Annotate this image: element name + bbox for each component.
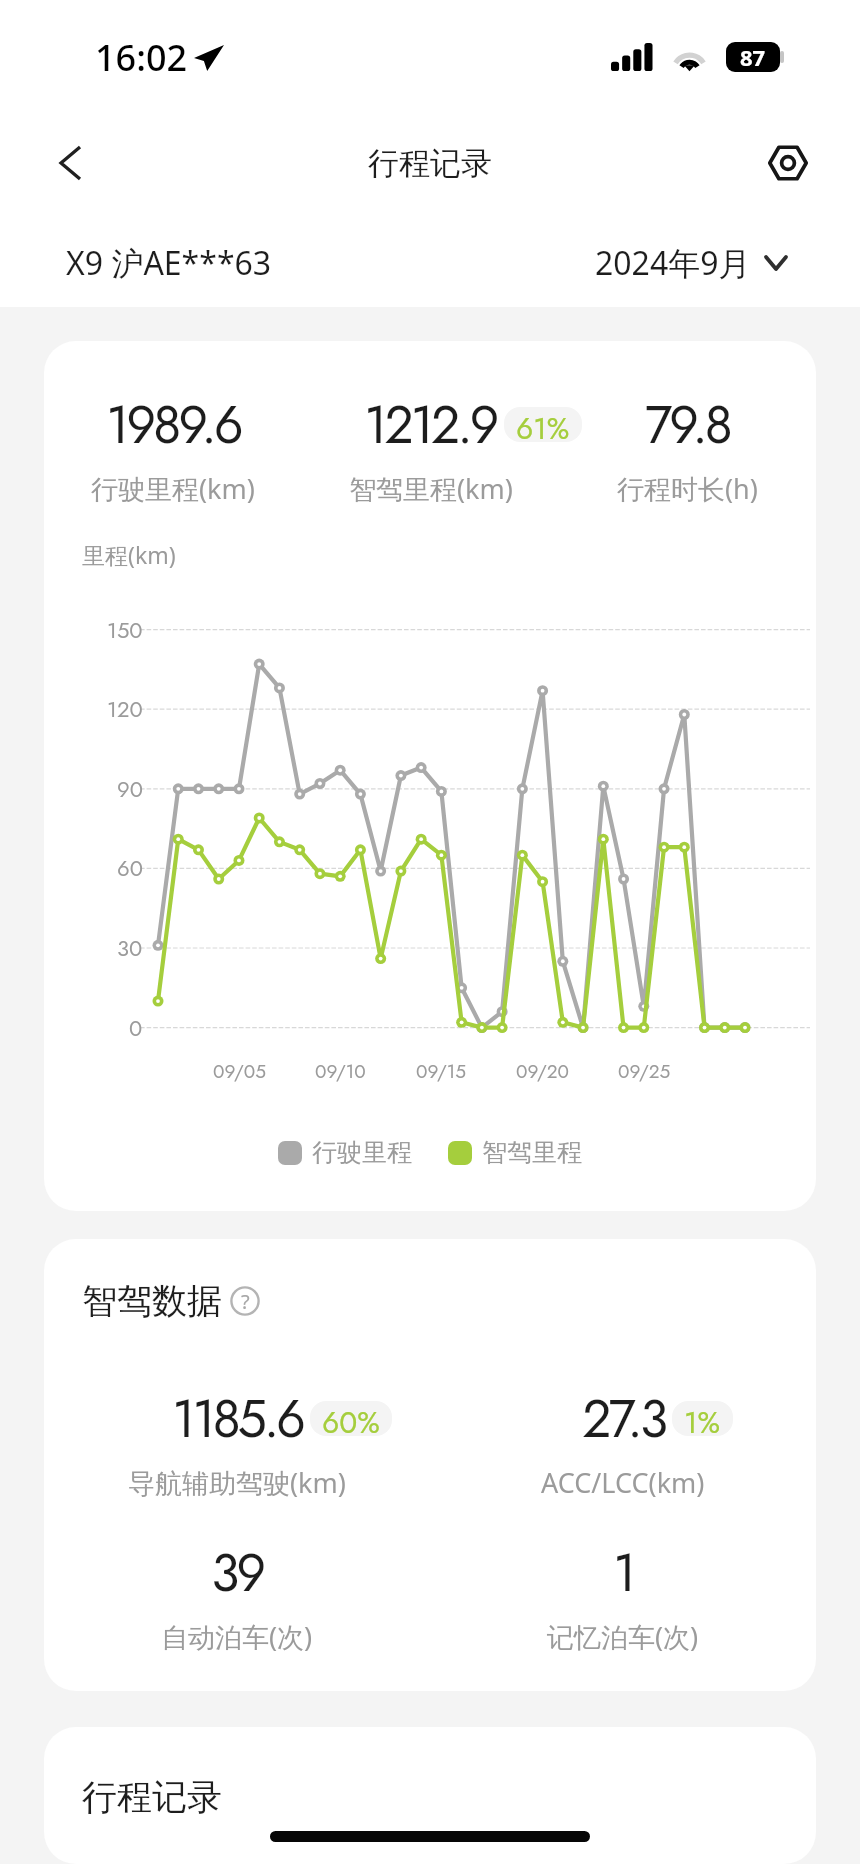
staticText: 60	[117, 852, 143, 884]
staticText: 自动泊车(次)	[161, 1618, 313, 1655]
staticText: 智驾里程	[482, 1137, 582, 1168]
staticText: 记忆泊车(次)	[547, 1618, 699, 1655]
staticText: 09/15	[416, 1058, 467, 1085]
staticText: 79.8	[645, 387, 730, 462]
staticText: 87	[740, 42, 766, 72]
staticText: 09/10	[315, 1058, 366, 1085]
staticText: 里程(km)	[82, 539, 176, 570]
staticText: 30	[117, 932, 143, 964]
button[interactable]: Back	[22, 115, 118, 211]
staticText: 行驶里程	[312, 1137, 412, 1168]
button[interactable]: 2024年9月	[595, 241, 786, 285]
staticText: 1	[613, 1535, 634, 1610]
staticText: 导航辅助驾驶(km)	[128, 1464, 346, 1501]
staticText: 09/20	[516, 1058, 570, 1085]
staticText: 智驾里程(km)	[349, 470, 513, 507]
staticText: ACC/LCC(km)	[541, 1464, 705, 1501]
staticText: 16:02	[95, 33, 188, 82]
staticText: 09/25	[618, 1058, 671, 1085]
staticText: 90	[117, 773, 143, 805]
staticText: 150	[107, 614, 143, 646]
staticText: 智驾数据	[82, 1279, 222, 1323]
staticText: ?	[241, 1288, 250, 1315]
staticText: 39	[211, 1535, 263, 1610]
button[interactable]: Settings	[740, 115, 836, 211]
staticText: 行程记录	[368, 144, 492, 183]
staticText: 0	[129, 1012, 143, 1044]
staticText: 行程记录	[82, 1775, 222, 1819]
staticText: 1212.9	[364, 387, 497, 462]
staticText: 1185.6	[172, 1381, 303, 1456]
staticText: 61%	[516, 407, 570, 442]
staticText: 09/05	[213, 1058, 266, 1085]
staticText: 120	[107, 693, 143, 725]
staticText: 1989.6	[106, 387, 241, 462]
staticText: 2024年9月	[595, 241, 751, 285]
staticText: 1%	[684, 1401, 721, 1436]
staticText: 60%	[322, 1401, 380, 1436]
staticText: 行程时长(h)	[617, 470, 758, 507]
staticText: 27.3	[582, 1381, 665, 1456]
staticText: X9 沪AE***63	[66, 241, 272, 285]
staticText: 行驶里程(km)	[91, 470, 255, 507]
